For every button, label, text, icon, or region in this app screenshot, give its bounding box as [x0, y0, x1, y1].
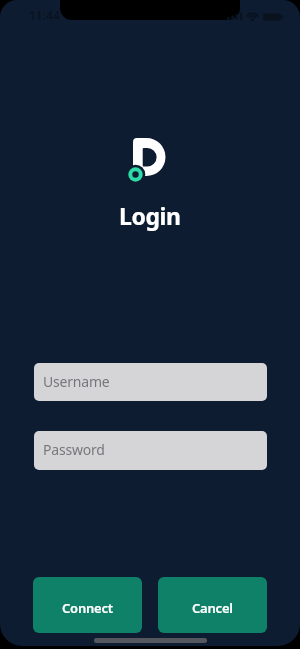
staticText: Connect	[62, 599, 113, 617]
staticText: Username	[43, 372, 110, 391]
button[interactable]: Cancel	[158, 577, 267, 633]
staticText: Password	[43, 440, 105, 459]
button[interactable]: Connect	[33, 577, 142, 633]
staticText: Login	[119, 200, 181, 231]
staticText: Cancel	[192, 599, 233, 617]
button[interactable]: Password	[34, 431, 267, 470]
staticText: 11:44	[29, 7, 60, 23]
button[interactable]: Username	[34, 363, 267, 401]
